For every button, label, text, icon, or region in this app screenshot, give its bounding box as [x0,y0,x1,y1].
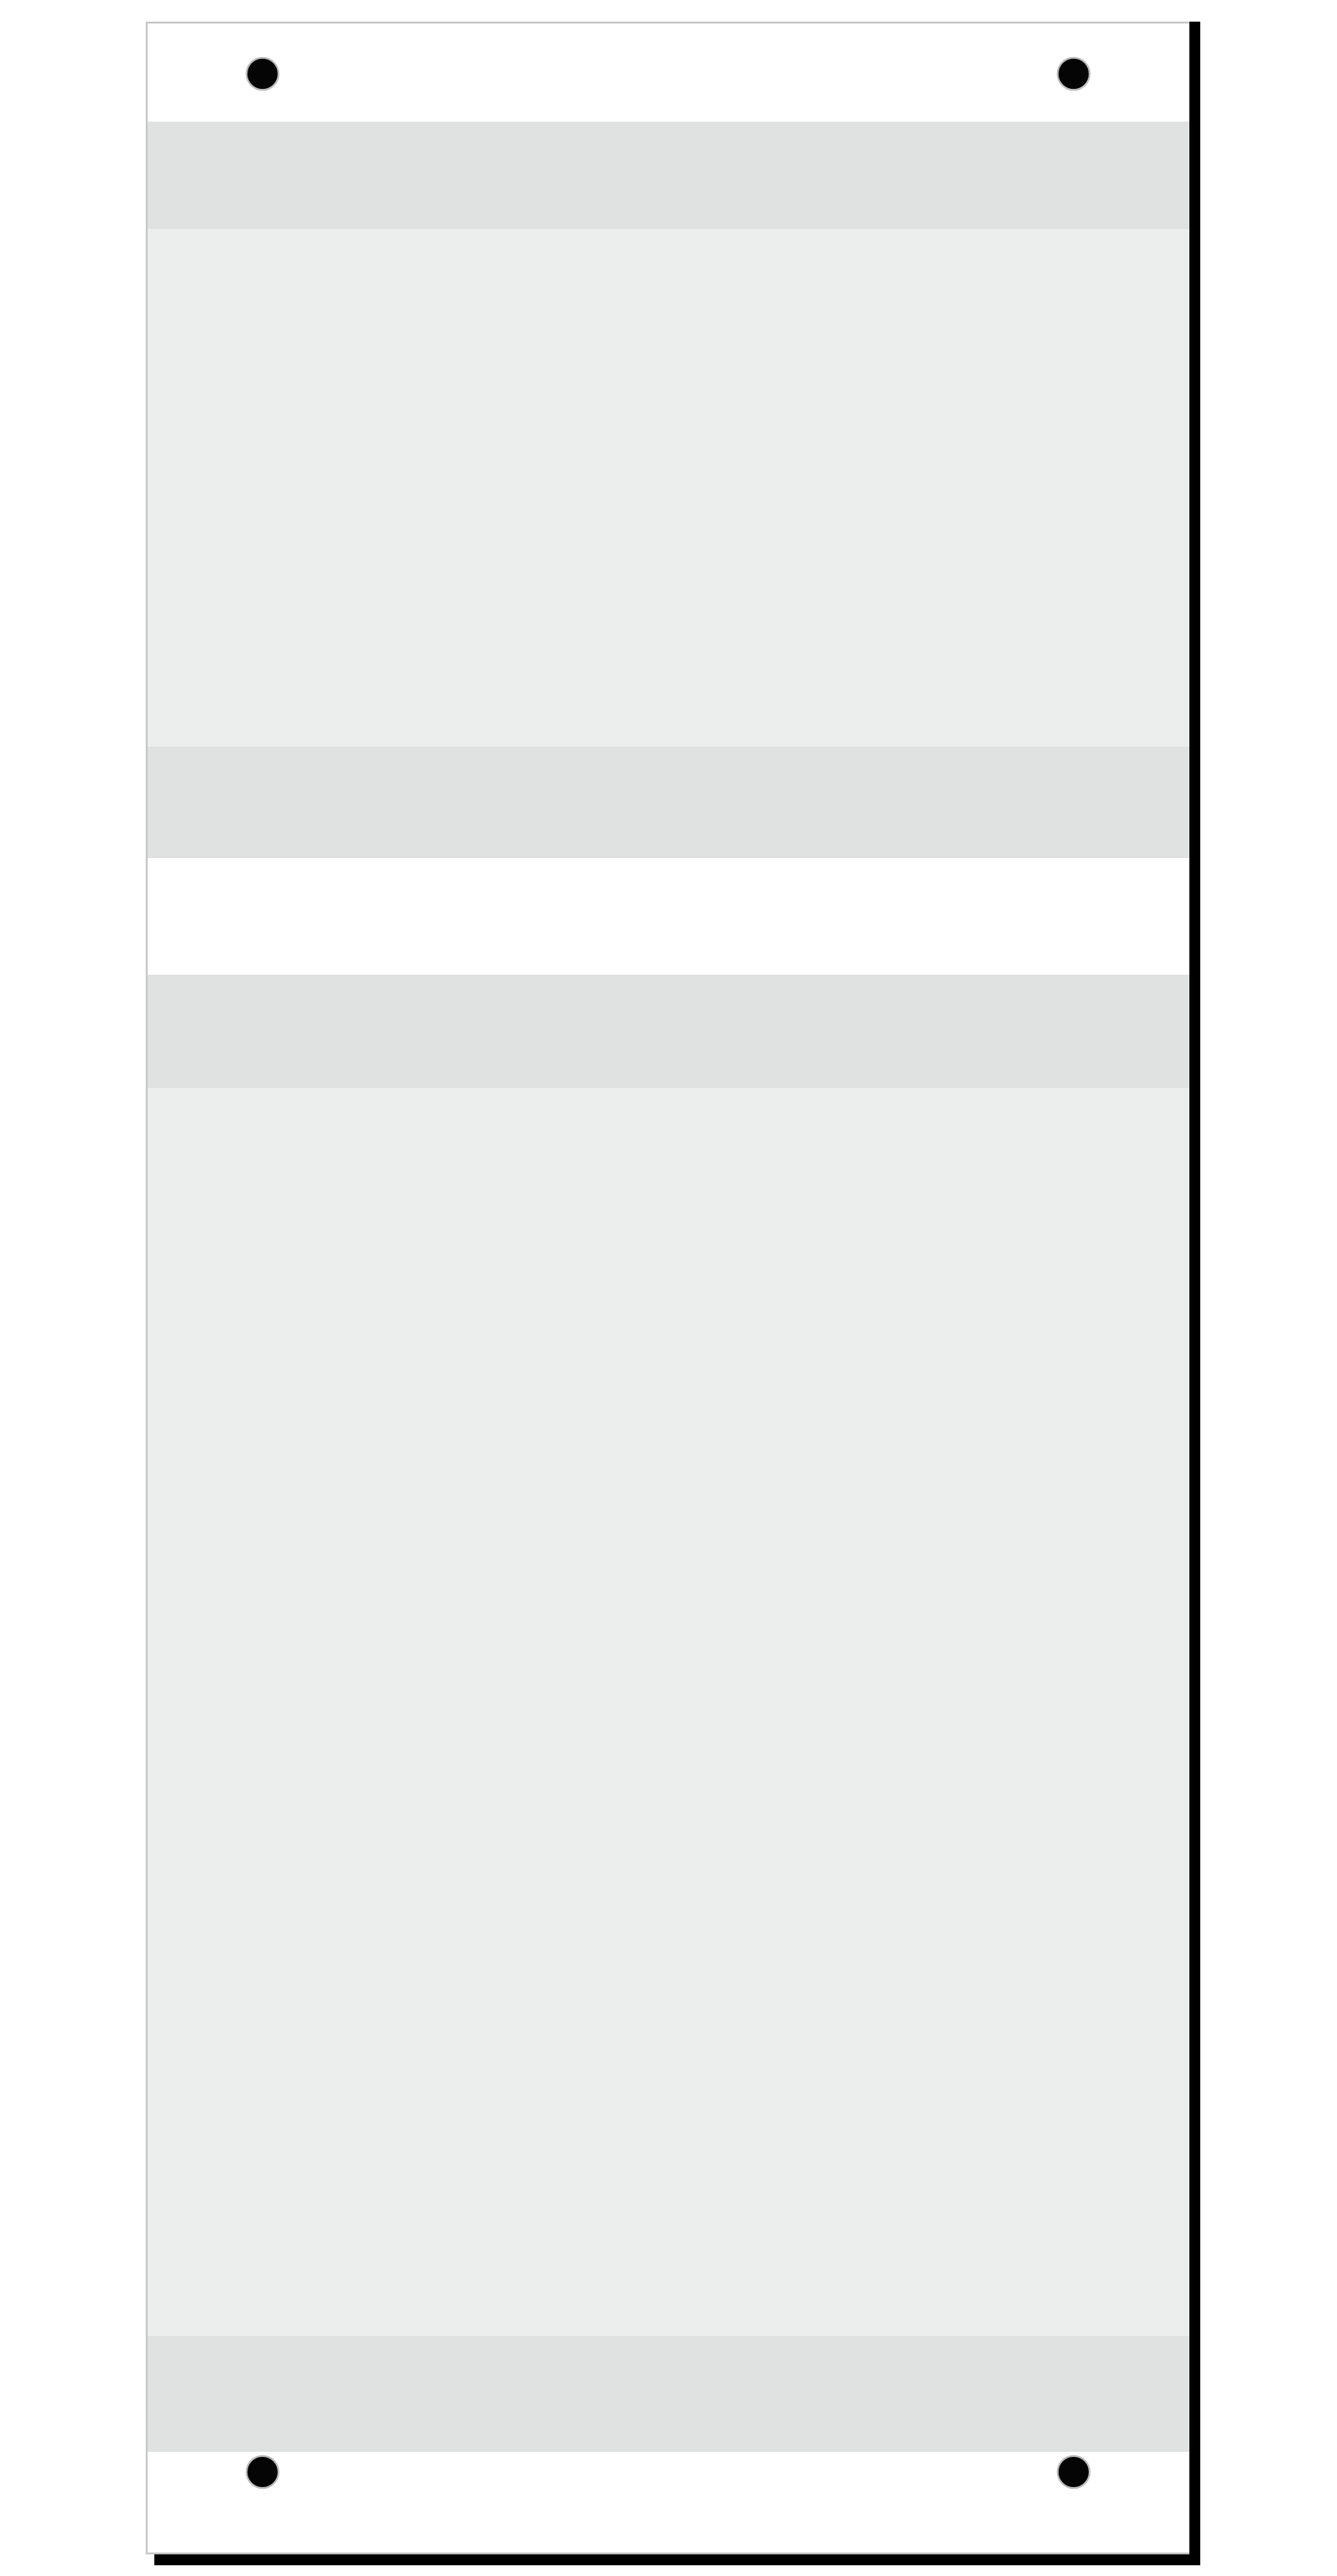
button[interactable]: Document page preview [0,0,1337,2576]
